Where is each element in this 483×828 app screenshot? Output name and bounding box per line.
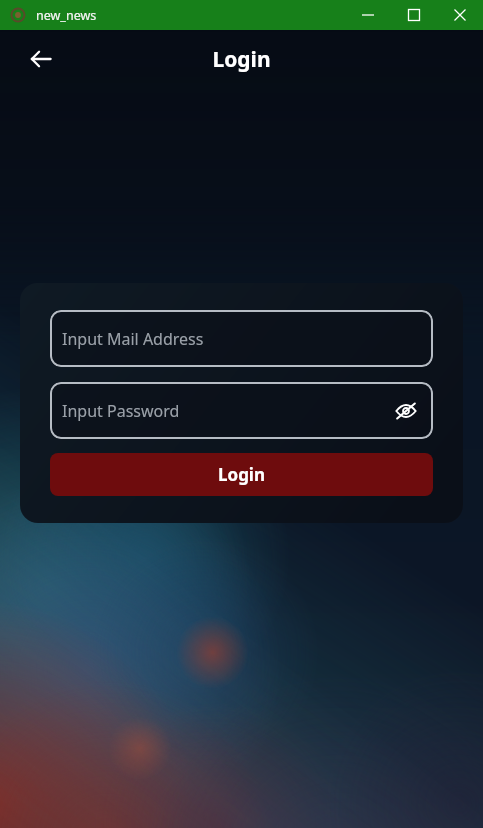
button[interactable]: Back	[20, 38, 62, 80]
button[interactable]: Input Mail Address	[50, 310, 433, 367]
button[interactable]: Maximize	[391, 0, 437, 30]
button[interactable]: Show password	[391, 396, 421, 426]
button[interactable]: Minimize	[345, 0, 391, 30]
button[interactable]: Close	[437, 0, 483, 30]
staticText: new_news	[36, 7, 97, 24]
staticText: Login	[212, 45, 271, 74]
staticText: Input Password	[62, 400, 180, 422]
button[interactable]: Login	[50, 453, 433, 496]
staticText: Login	[218, 463, 266, 486]
button[interactable]: Input Password	[50, 382, 433, 439]
staticText: Input Mail Address	[62, 328, 204, 350]
